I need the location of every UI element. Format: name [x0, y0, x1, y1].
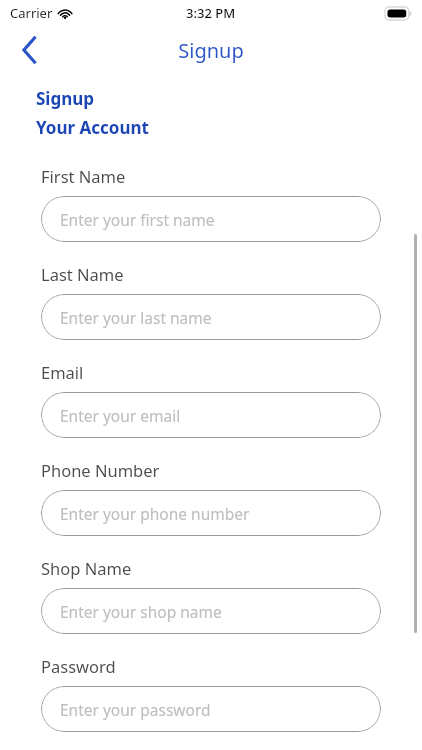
- button[interactable]: Enter your shop name: [41, 588, 381, 634]
- staticText: Shop Name: [41, 557, 132, 579]
- staticText: Enter your email: [60, 405, 181, 426]
- button[interactable]: Enter your password: [41, 686, 381, 732]
- staticText: Carrier: [10, 4, 53, 22]
- staticText: 3:32 PM: [186, 4, 236, 22]
- button[interactable]: Enter your last name: [41, 294, 381, 340]
- button[interactable]: Enter your first name: [41, 196, 381, 242]
- staticText: Enter your phone number: [60, 503, 250, 524]
- staticText: Phone Number: [41, 459, 160, 481]
- button[interactable]: Enter your phone number: [41, 490, 381, 536]
- staticText: Enter your first name: [60, 209, 215, 230]
- staticText: Last Name: [41, 263, 124, 285]
- staticText: Email: [41, 361, 84, 383]
- staticText: Password: [41, 655, 116, 677]
- staticText: Enter your password: [60, 699, 211, 720]
- staticText: Enter your last name: [60, 307, 212, 328]
- button[interactable]: Enter your email: [41, 392, 381, 438]
- staticText: Signup: [178, 37, 244, 64]
- staticText: First Name: [41, 165, 126, 187]
- staticText: Enter your shop name: [60, 601, 222, 622]
- staticText: Signup: [36, 87, 95, 110]
- button[interactable]: Back: [10, 30, 50, 70]
- staticText: Your Account: [36, 116, 149, 139]
